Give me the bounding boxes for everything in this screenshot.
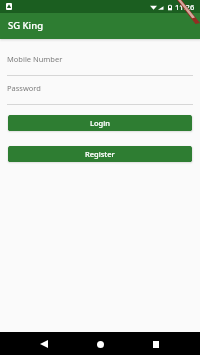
button[interactable]: Login <box>8 115 192 131</box>
button[interactable]: Home <box>92 336 108 352</box>
staticText: 11:26 <box>175 2 195 12</box>
staticText: Password <box>7 83 41 93</box>
staticText: Mobile Number <box>7 54 63 64</box>
button[interactable]: Recents <box>148 336 164 352</box>
button[interactable]: Register <box>8 146 192 162</box>
button[interactable]: Back <box>36 336 52 352</box>
staticText: Login <box>90 118 110 128</box>
staticText: SG King <box>8 19 44 32</box>
button[interactable]: Mobile Number <box>0 39 200 76</box>
button[interactable]: Password <box>0 76 200 105</box>
staticText: Register <box>85 149 115 159</box>
